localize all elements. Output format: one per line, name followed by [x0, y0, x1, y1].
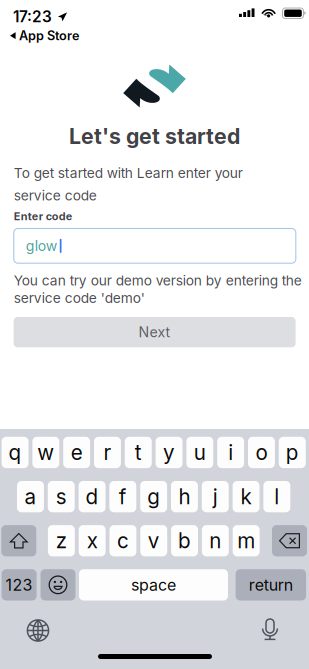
button[interactable]: i — [217, 437, 244, 468]
staticText: space — [131, 575, 176, 595]
staticText: s — [56, 484, 67, 509]
staticText: service code — [14, 187, 97, 204]
staticText: f — [119, 484, 127, 509]
staticText: To get started with Learn enter your — [14, 165, 243, 181]
staticText: e — [71, 440, 83, 465]
button[interactable]: space — [79, 569, 228, 600]
button[interactable]: e — [63, 437, 90, 468]
button[interactable]: x — [79, 525, 106, 556]
button[interactable]: h — [171, 481, 198, 512]
button[interactable]: n — [202, 525, 229, 556]
staticText: Enter code — [14, 210, 73, 223]
staticText: h — [178, 484, 190, 509]
button[interactable]: l — [263, 481, 290, 512]
button[interactable]: u — [186, 437, 213, 468]
staticText: You can try our demo version by entering… — [14, 272, 302, 289]
staticText: b — [178, 528, 191, 553]
staticText: service code 'demo' — [14, 290, 145, 306]
button[interactable]: a — [17, 481, 44, 512]
button[interactable]: c — [109, 525, 136, 556]
staticText: n — [209, 528, 221, 553]
button[interactable]: f — [109, 481, 136, 512]
staticText: j — [213, 484, 218, 509]
staticText: v — [148, 528, 160, 553]
staticText: m — [237, 528, 255, 553]
staticText: p — [286, 440, 299, 465]
staticText: l — [274, 484, 279, 509]
button[interactable]: q — [2, 437, 28, 468]
staticText: r — [103, 440, 111, 465]
button[interactable]: Next keyboard — [26, 619, 49, 642]
button[interactable]: v — [140, 525, 167, 556]
staticText: u — [194, 440, 206, 465]
button[interactable]: k — [233, 481, 259, 512]
button[interactable]: w — [32, 437, 59, 468]
staticText: o — [255, 440, 267, 465]
staticText: z — [56, 528, 67, 553]
staticText: Let's get started — [69, 123, 240, 149]
staticText: App Store — [19, 28, 79, 43]
staticText: k — [241, 484, 252, 509]
button[interactable]: return — [236, 569, 306, 600]
button[interactable]: Shift — [1, 525, 36, 556]
button[interactable]: b — [171, 525, 198, 556]
staticText: a — [24, 484, 36, 509]
staticText: return — [249, 575, 293, 595]
button[interactable]: s — [48, 481, 75, 512]
staticText: t — [135, 440, 142, 465]
staticText: x — [87, 528, 98, 553]
button[interactable]: m — [233, 525, 260, 556]
button[interactable]: j — [202, 481, 229, 512]
staticText: i — [228, 440, 233, 465]
button[interactable]: y — [156, 437, 182, 468]
button[interactable]: Next — [14, 317, 296, 347]
staticText: g — [147, 484, 160, 509]
staticText: 123 — [6, 575, 33, 595]
staticText: q — [8, 440, 21, 465]
button[interactable]: d — [79, 481, 105, 512]
button[interactable]: z — [48, 525, 75, 556]
staticText: 17:23 — [13, 7, 52, 26]
button[interactable]: t — [125, 437, 152, 468]
button[interactable]: g — [140, 481, 167, 512]
staticText: c — [117, 528, 129, 553]
button[interactable]: o — [248, 437, 275, 468]
staticText: w — [37, 440, 54, 465]
button[interactable]: Emoji — [40, 569, 75, 600]
button[interactable]: Delete — [272, 525, 307, 556]
button[interactable]: p — [279, 437, 306, 468]
staticText: Next — [139, 324, 171, 341]
staticText: d — [85, 484, 98, 509]
button[interactable]: 123 — [2, 569, 37, 600]
staticText: y — [163, 440, 175, 465]
button[interactable]: Dictate — [261, 618, 279, 642]
staticText: glow — [26, 237, 58, 254]
button[interactable]: r — [94, 437, 121, 468]
